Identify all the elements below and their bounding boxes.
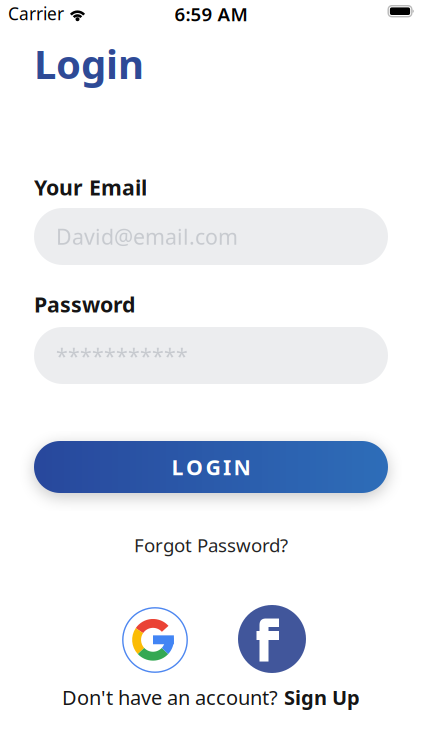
staticText: Sign Up	[284, 684, 360, 711]
button[interactable]	[238, 605, 306, 673]
staticText: 6:59 AM	[174, 1, 247, 26]
staticText: Don't have an account?	[62, 684, 278, 711]
button[interactable]: Don't have an account?	[0, 684, 422, 711]
staticText: O	[186, 453, 203, 481]
staticText: David@email.com	[56, 222, 238, 251]
staticText: ***********	[56, 341, 188, 370]
staticText: G	[205, 453, 220, 481]
button[interactable]	[122, 607, 188, 673]
staticText: Forgot Password?	[134, 532, 288, 557]
staticText: N	[233, 453, 250, 481]
button[interactable]: ***********	[34, 327, 388, 384]
staticText: I	[223, 453, 231, 481]
staticText: Login	[34, 37, 144, 90]
staticText: Your Email	[34, 173, 147, 201]
staticText: Carrier	[8, 2, 64, 25]
button[interactable]: L	[34, 441, 388, 493]
button[interactable]: David@email.com	[34, 208, 388, 265]
button[interactable]: Forgot Password?	[0, 532, 422, 557]
staticText: L	[171, 453, 183, 481]
staticText: Password	[34, 290, 135, 318]
